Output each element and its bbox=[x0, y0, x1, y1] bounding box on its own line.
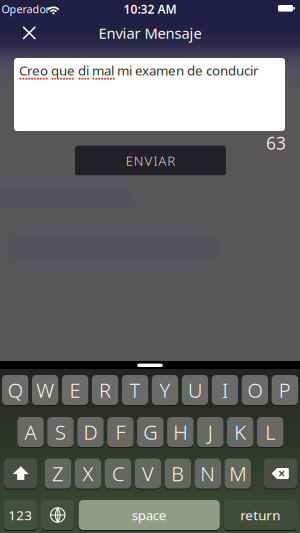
staticText: W bbox=[36, 377, 54, 403]
staticText: N bbox=[134, 152, 144, 169]
staticText: Enviar Mensaje bbox=[98, 23, 201, 43]
button[interactable]: S bbox=[47, 417, 74, 447]
staticText: Y bbox=[159, 377, 170, 403]
staticText: D bbox=[83, 419, 97, 445]
staticText: L bbox=[265, 419, 275, 445]
staticText: 63 bbox=[266, 131, 286, 154]
staticText: F bbox=[115, 419, 125, 445]
staticText: K bbox=[234, 419, 246, 445]
staticText: H bbox=[173, 419, 187, 445]
staticText: I bbox=[222, 377, 228, 403]
staticText: C bbox=[112, 460, 124, 487]
button[interactable]: C bbox=[105, 458, 131, 488]
staticText: 10:32 AM bbox=[123, 1, 176, 17]
button[interactable]: R bbox=[92, 375, 118, 405]
staticText: I bbox=[153, 152, 157, 169]
button[interactable]: P bbox=[272, 375, 298, 405]
button[interactable]: B bbox=[165, 458, 191, 488]
button[interactable]: K bbox=[227, 417, 253, 447]
button[interactable]: E bbox=[62, 375, 88, 405]
button[interactable]: L bbox=[257, 417, 283, 447]
button[interactable]: O bbox=[242, 375, 268, 405]
staticText: space bbox=[132, 506, 167, 524]
button[interactable]: Creo que di mal mi examen de conducir bbox=[14, 58, 285, 131]
staticText: Creo que di mal mi examen de conducir bbox=[19, 61, 259, 79]
staticText: R bbox=[167, 152, 175, 169]
staticText: S bbox=[55, 419, 66, 445]
staticText: X bbox=[82, 460, 93, 487]
staticText: M bbox=[229, 460, 246, 487]
button[interactable]: M bbox=[225, 458, 251, 488]
button[interactable]: space bbox=[79, 500, 220, 530]
button[interactable] bbox=[17, 21, 41, 45]
staticText: B bbox=[171, 460, 184, 487]
button[interactable]: A bbox=[17, 417, 44, 447]
button[interactable]: W bbox=[32, 375, 58, 405]
staticText: return bbox=[240, 506, 280, 524]
staticText: A bbox=[24, 419, 36, 445]
button[interactable]: F bbox=[107, 417, 134, 447]
staticText: Q bbox=[8, 377, 23, 403]
button[interactable]: D bbox=[77, 417, 104, 447]
button[interactable]: Q bbox=[2, 375, 28, 405]
button[interactable]: T bbox=[122, 375, 148, 405]
button[interactable]: V bbox=[135, 458, 161, 488]
button[interactable]: return bbox=[223, 500, 297, 530]
staticText: V bbox=[145, 152, 153, 169]
button[interactable]: G bbox=[137, 417, 163, 447]
button[interactable]: J bbox=[197, 417, 223, 447]
staticText: Operador bbox=[1, 2, 49, 16]
button[interactable]: H bbox=[167, 417, 193, 447]
staticText: A bbox=[158, 152, 166, 169]
button[interactable]: Z bbox=[45, 458, 71, 488]
button[interactable] bbox=[41, 500, 74, 530]
staticText: T bbox=[129, 377, 140, 403]
staticText: V bbox=[142, 460, 154, 487]
button[interactable]: I bbox=[212, 375, 238, 405]
staticText: U bbox=[188, 377, 202, 403]
button[interactable]: N bbox=[195, 458, 221, 488]
staticText: 123 bbox=[8, 506, 32, 524]
staticText: E bbox=[70, 377, 81, 403]
staticText: Z bbox=[52, 460, 64, 487]
staticText: R bbox=[99, 377, 111, 403]
staticText: J bbox=[208, 419, 213, 445]
staticText: E bbox=[126, 152, 133, 169]
button[interactable]: Y bbox=[152, 375, 178, 405]
staticText: G bbox=[143, 419, 157, 445]
button[interactable]: 123 bbox=[3, 500, 37, 530]
button[interactable] bbox=[4, 458, 37, 488]
staticText: O bbox=[247, 377, 262, 403]
staticText: N bbox=[200, 460, 215, 487]
button[interactable] bbox=[263, 458, 297, 488]
button[interactable]: U bbox=[182, 375, 208, 405]
button[interactable]: E bbox=[75, 146, 226, 175]
button[interactable]: X bbox=[75, 458, 101, 488]
staticText: P bbox=[279, 377, 291, 403]
